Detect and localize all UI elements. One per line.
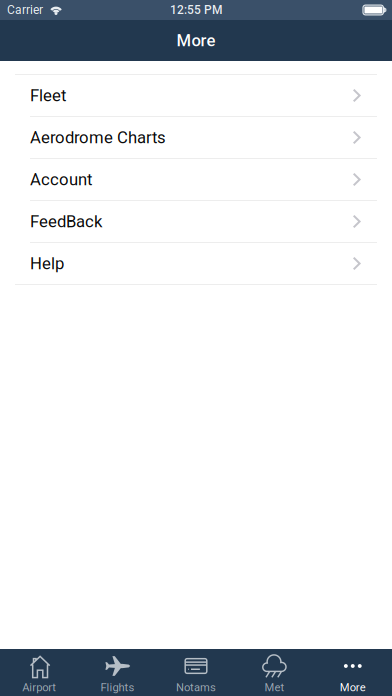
staticText: Met — [264, 681, 284, 694]
button[interactable]: Fleet — [0, 75, 392, 116]
staticText: Airport — [22, 681, 56, 694]
staticText: FeedBack — [30, 212, 102, 231]
staticText: Flights — [101, 681, 135, 694]
staticText: Account — [30, 170, 92, 189]
button[interactable]: Aerodrome Charts — [0, 117, 392, 158]
staticText: Fleet — [30, 86, 66, 105]
button[interactable]: Notams — [157, 649, 235, 696]
staticText: Aerodrome Charts — [30, 128, 166, 147]
staticText: Notams — [176, 681, 216, 694]
staticText: More — [340, 681, 366, 694]
staticText: Help — [30, 254, 64, 273]
button[interactable]: Airport — [0, 649, 78, 696]
button[interactable]: Met — [235, 649, 314, 696]
button[interactable]: Account — [0, 159, 392, 200]
staticText: 12:55 PM — [170, 3, 222, 17]
staticText: More — [176, 31, 215, 50]
button[interactable]: Help — [0, 243, 392, 284]
button[interactable]: Flights — [78, 649, 157, 696]
staticText: Carrier — [7, 3, 43, 17]
button[interactable]: FeedBack — [0, 201, 392, 242]
button[interactable]: More — [314, 649, 392, 696]
